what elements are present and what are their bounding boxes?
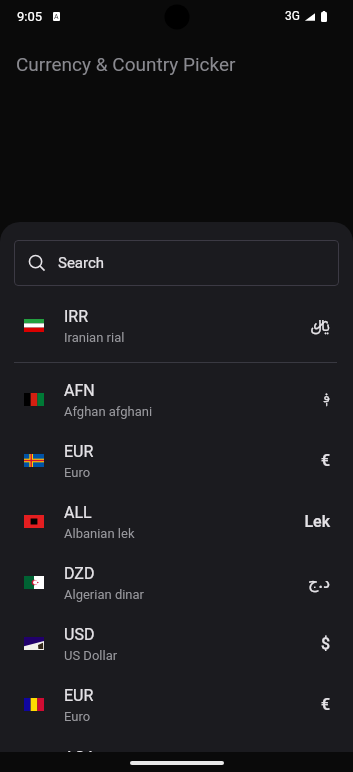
staticText: ؋: [323, 386, 330, 413]
button[interactable]: EUR: [0, 674, 353, 735]
button[interactable]: ALL: [0, 491, 353, 552]
staticText: EUR: [64, 442, 94, 461]
staticText: IRR: [64, 307, 89, 326]
staticText: Algerian dinar: [64, 587, 145, 602]
staticText: EUR: [64, 686, 94, 705]
staticText: ﷼: [310, 309, 330, 343]
button[interactable]: IRR: [0, 295, 353, 356]
button[interactable]: EUR: [0, 430, 353, 491]
staticText: AFN: [64, 381, 95, 400]
staticText: US Dollar: [64, 648, 118, 663]
button[interactable]: AOA: [0, 736, 353, 752]
staticText: د.ج: [308, 573, 330, 592]
staticText: Euro: [64, 709, 91, 724]
staticText: €: [320, 695, 330, 714]
staticText: €: [320, 451, 330, 470]
staticText: A: [54, 13, 59, 21]
staticText: Search: [58, 254, 105, 272]
staticText: 3G: [285, 9, 300, 23]
staticText: Albanian lek: [64, 526, 135, 541]
button[interactable]: DZD: [0, 552, 353, 613]
staticText: Afghan afghani: [64, 404, 153, 419]
staticText: Euro: [64, 465, 91, 480]
staticText: 9:05: [17, 9, 43, 24]
button[interactable]: Search: [14, 240, 339, 286]
staticText: Currency & Country Picker: [16, 53, 236, 75]
staticText: Iranian rial: [64, 330, 125, 345]
staticText: DZD: [64, 564, 95, 583]
button[interactable]: AFN: [0, 369, 353, 430]
button[interactable]: USD: [0, 613, 353, 674]
staticText: Lek: [304, 512, 330, 531]
staticText: ALL: [64, 503, 92, 522]
staticText: USD: [64, 625, 95, 644]
staticText: $: [320, 634, 330, 653]
staticText: AOA: [64, 748, 96, 752]
